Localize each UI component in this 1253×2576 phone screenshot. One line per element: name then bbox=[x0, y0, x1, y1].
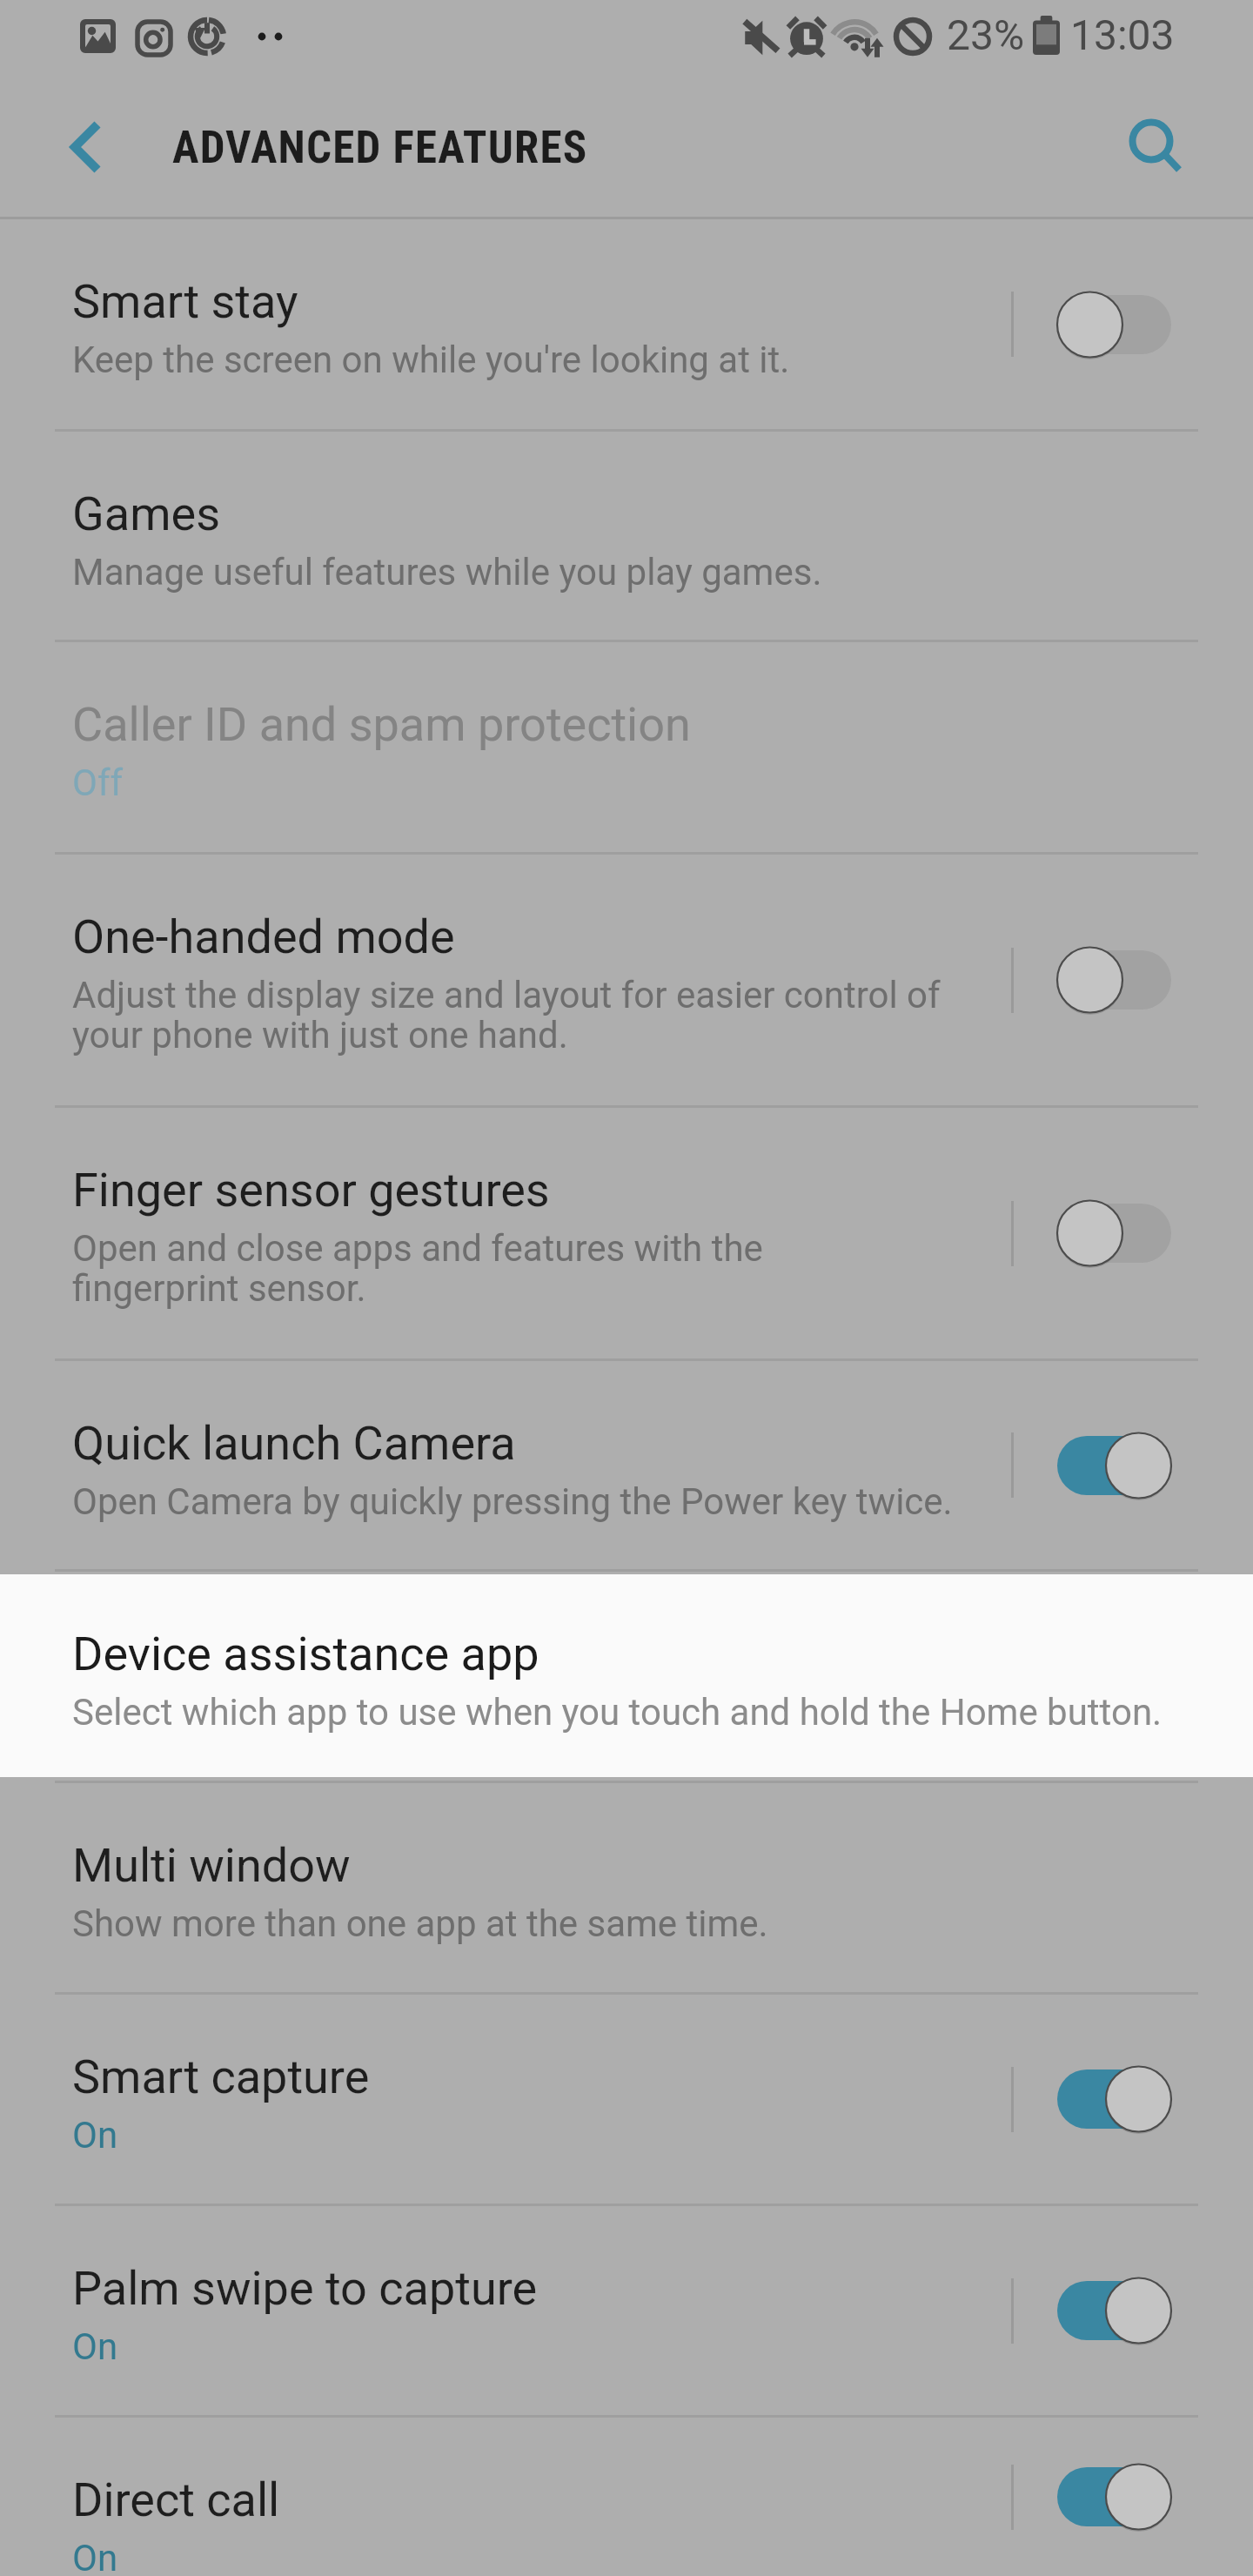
button[interactable]: Quick launch Camera bbox=[0, 1361, 1253, 1569]
staticText: Device assistance app bbox=[72, 1627, 539, 1681]
staticText: 23% bbox=[947, 10, 1025, 59]
button[interactable]: Caller ID and spam protection bbox=[0, 642, 1253, 852]
button[interactable]: Direct call bbox=[0, 2418, 1253, 2576]
button[interactable]: Finger sensor gestures bbox=[0, 1108, 1253, 1358]
staticText: Smart capture bbox=[72, 2049, 370, 2104]
staticText: On bbox=[72, 2325, 118, 2368]
button[interactable]: Multi window bbox=[0, 1783, 1253, 1992]
button[interactable]: Smart capture bbox=[0, 1995, 1253, 2204]
staticText: Open and close apps and features with th… bbox=[72, 1227, 763, 1270]
button[interactable]: Palm swipe to capture bbox=[0, 2206, 1253, 2415]
staticText: ADVANCED FEATURES bbox=[172, 122, 588, 174]
button[interactable]: Games bbox=[0, 432, 1253, 640]
staticText: Show more than one app at the same time. bbox=[72, 1902, 768, 1945]
staticText: Keep the screen on while you're looking … bbox=[72, 339, 790, 381]
staticText: your phone with just one hand. bbox=[72, 1014, 568, 1057]
staticText: Games bbox=[72, 486, 221, 541]
staticText: Caller ID and spam protection bbox=[72, 697, 691, 752]
button[interactable]: Turn on bbox=[1057, 1199, 1171, 1267]
staticText: Direct call bbox=[72, 2472, 280, 2527]
button[interactable]: Turn off bbox=[1057, 1432, 1171, 1499]
button[interactable]: Turn off bbox=[1057, 2463, 1171, 2531]
staticText: Open Camera by quickly pressing the Powe… bbox=[72, 1480, 953, 1523]
staticText: Select which app to use when you touch a… bbox=[72, 1691, 1163, 1734]
staticText: Finger sensor gestures bbox=[72, 1163, 550, 1218]
button[interactable]: Turn on bbox=[1057, 291, 1171, 359]
button[interactable]: Search bbox=[1100, 95, 1203, 198]
staticText: Multi window bbox=[72, 1838, 351, 1893]
staticText: Smart stay bbox=[72, 274, 298, 329]
staticText: On bbox=[72, 2114, 118, 2157]
button[interactable]: Device assistance app bbox=[0, 1572, 1253, 1781]
staticText: Palm swipe to capture bbox=[72, 2261, 538, 2316]
staticText: Off bbox=[72, 761, 124, 804]
staticText: 13:03 bbox=[1070, 10, 1175, 59]
staticText: Adjust the display size and layout for e… bbox=[72, 974, 941, 1016]
button[interactable]: Turn off bbox=[1057, 2277, 1171, 2345]
button[interactable]: Turn off bbox=[1057, 2065, 1171, 2133]
button[interactable]: Turn on bbox=[1057, 946, 1171, 1014]
button[interactable]: Smart stay bbox=[0, 219, 1253, 429]
staticText: Manage useful features while you play ga… bbox=[72, 551, 822, 594]
button[interactable]: Navigate up bbox=[31, 95, 134, 198]
staticText: On bbox=[72, 2537, 118, 2576]
button[interactable]: One-handed mode bbox=[0, 855, 1253, 1105]
staticText: One-handed mode bbox=[72, 909, 455, 964]
staticText: fingerprint sensor. bbox=[72, 1267, 366, 1310]
staticText: Quick launch Camera bbox=[72, 1416, 516, 1471]
